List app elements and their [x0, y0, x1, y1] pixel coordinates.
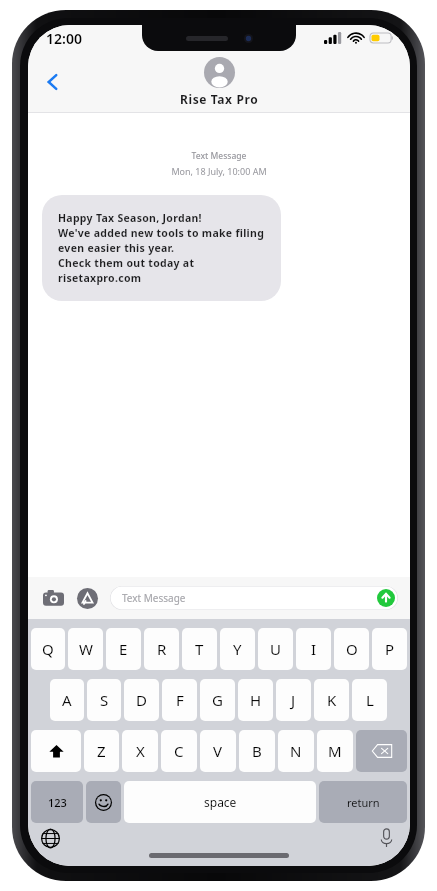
staticText: Q	[42, 639, 54, 659]
button[interactable]: Send	[377, 589, 395, 607]
staticText: B	[252, 741, 262, 761]
staticText: W	[79, 639, 93, 659]
button[interactable]: N	[278, 730, 314, 772]
button[interactable]: R	[144, 628, 179, 670]
staticText: M	[328, 741, 342, 761]
staticText: Y	[233, 639, 242, 659]
staticText: H	[250, 690, 262, 710]
staticText: P	[385, 639, 395, 659]
staticText: 123	[48, 795, 67, 810]
button[interactable]: Dictate	[372, 824, 400, 852]
button[interactable]: O	[334, 628, 369, 670]
staticText: Text Message	[28, 150, 410, 162]
button[interactable]: Happy Tax Season, Jordan! We've added ne…	[42, 195, 281, 301]
button[interactable]: Rise Tax Pro	[180, 57, 259, 107]
staticText: V	[213, 741, 223, 761]
button[interactable]: Y	[220, 628, 255, 670]
staticText: F	[176, 690, 184, 710]
staticText: A	[62, 690, 72, 710]
button[interactable]: Back	[34, 63, 72, 101]
staticText: Text Message	[122, 591, 186, 605]
button[interactable]: Shift	[31, 730, 81, 772]
staticText: E	[119, 639, 128, 659]
button[interactable]: K	[314, 679, 349, 721]
staticText: Rise Tax Pro	[180, 91, 259, 107]
button[interactable]: E	[106, 628, 141, 670]
button[interactable]: Emoji	[86, 781, 121, 823]
button[interactable]: Q	[31, 628, 65, 670]
staticText: G	[212, 690, 223, 710]
button[interactable]: U	[258, 628, 293, 670]
button[interactable]: C	[161, 730, 197, 772]
button[interactable]: X	[122, 730, 158, 772]
staticText: N	[290, 741, 302, 761]
button[interactable]: Z	[84, 730, 119, 772]
staticText: 12:00	[46, 29, 82, 48]
staticText: K	[327, 690, 337, 710]
button[interactable]: W	[68, 628, 103, 670]
button[interactable]: J	[276, 679, 311, 721]
staticText: L	[366, 690, 374, 710]
button[interactable]: S	[87, 679, 121, 721]
button[interactable]: G	[200, 679, 235, 721]
button[interactable]: Camera	[40, 585, 66, 611]
staticText: S	[100, 690, 109, 710]
button[interactable]: P	[372, 628, 407, 670]
button[interactable]: V	[200, 730, 236, 772]
staticText: U	[270, 639, 281, 659]
staticText: return	[347, 795, 380, 810]
button[interactable]: M	[317, 730, 353, 772]
button[interactable]: D	[124, 679, 159, 721]
staticText: D	[136, 690, 147, 710]
staticText: Mon, 18 July, 10:00 AM	[28, 165, 410, 177]
button[interactable]: App Store	[74, 585, 100, 611]
staticText: X	[136, 741, 145, 761]
button[interactable]: A	[50, 679, 84, 721]
staticText: C	[174, 741, 184, 761]
staticText: J	[291, 690, 296, 710]
staticText: Happy Tax Season, Jordan! We've added ne…	[58, 211, 265, 285]
button[interactable]: L	[352, 679, 387, 721]
button[interactable]: 123	[31, 781, 83, 823]
button[interactable]: Text Message	[110, 586, 398, 610]
staticText: space	[204, 794, 237, 810]
staticText: I	[311, 639, 317, 659]
staticText: R	[157, 639, 167, 659]
button[interactable]: B	[239, 730, 275, 772]
button[interactable]: H	[238, 679, 273, 721]
button[interactable]: I	[296, 628, 331, 670]
staticText: T	[195, 639, 204, 659]
button[interactable]: Switch keyboard	[36, 824, 64, 852]
button[interactable]: return	[319, 781, 407, 823]
button[interactable]: F	[162, 679, 197, 721]
staticText: O	[346, 639, 358, 659]
button[interactable]: Backspace	[356, 730, 407, 772]
staticText: Z	[97, 741, 106, 761]
button[interactable]: space	[124, 781, 316, 823]
button[interactable]: T	[182, 628, 217, 670]
